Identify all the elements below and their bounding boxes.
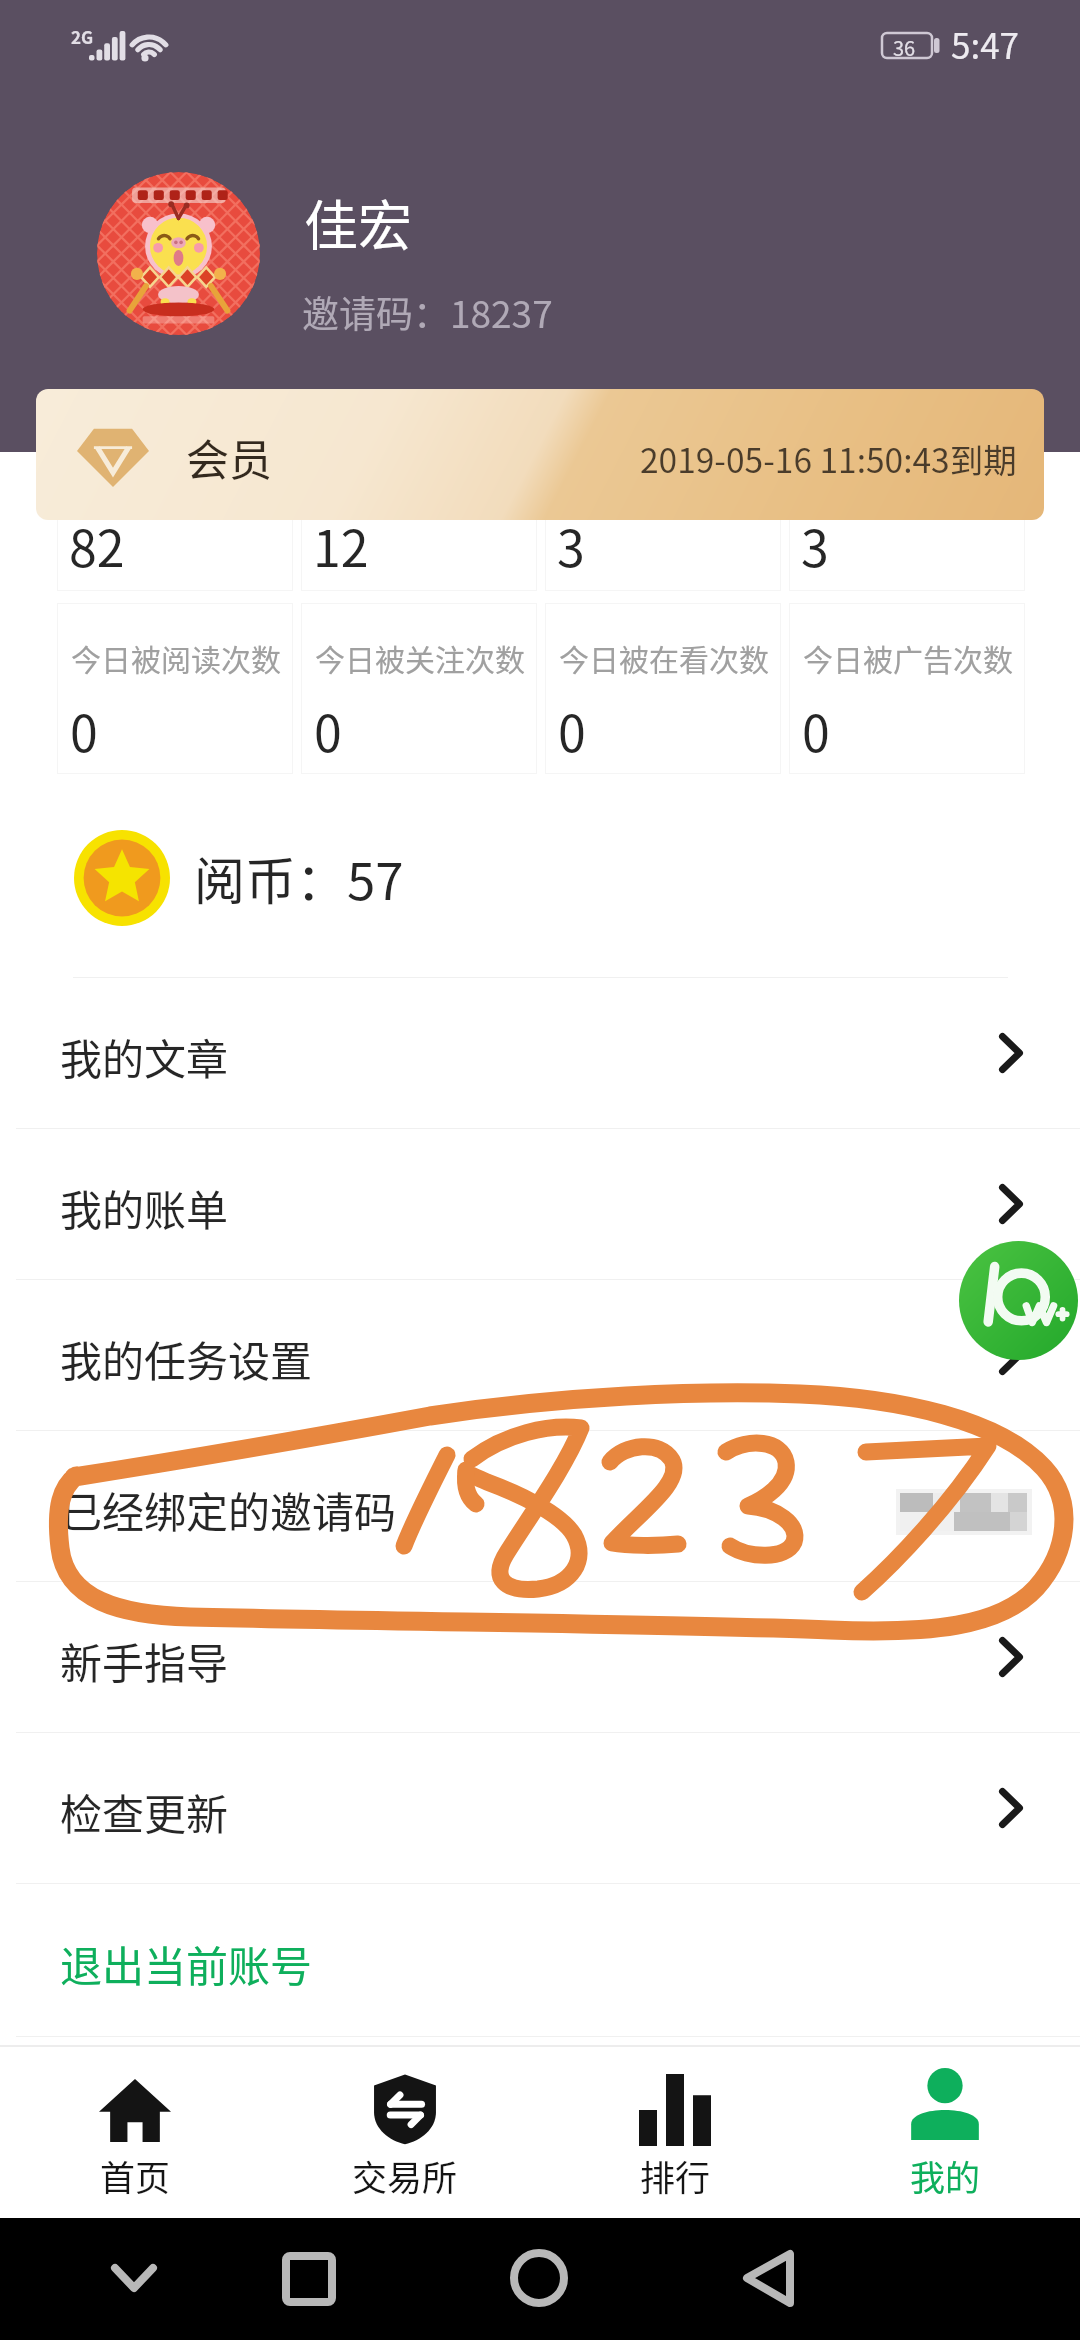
button[interactable]: 会员 [36,389,1044,520]
button[interactable]: 我的账单 [0,1129,1080,1279]
button[interactable]: 排行 [540,2047,810,2227]
staticText: 会员 [186,426,272,488]
staticText: 今日被在看次数 [559,636,769,679]
button[interactable]: 已经绑定的邀请码 [0,1431,1080,1581]
staticText: 36 [893,33,916,62]
staticText: 0 [70,694,98,766]
staticText: 今日被广告次数 [803,636,1013,679]
staticText: 3 [557,509,585,581]
staticText: 3 [801,509,829,581]
staticText: 阅币：57 [194,841,404,915]
button[interactable]: 新手指导 [0,1582,1080,1732]
staticText: 佳宏 [304,183,412,261]
button[interactable]: 10w plus [959,1241,1078,1360]
button[interactable]: 3 [789,462,1025,591]
staticText: 5:47 [951,18,1020,69]
button[interactable]: 今日被在看次数 [545,603,781,774]
staticText: 今日被阅读次数 [71,636,281,679]
button[interactable]: 阅币：57 [74,828,404,928]
staticText: 今日被关注次数 [315,636,525,679]
button[interactable]: 3 [545,462,781,591]
button[interactable]: 首页 [0,2047,270,2227]
staticText: 已经绑定的邀请码 [60,1479,397,1540]
staticText: 0 [314,694,342,766]
staticText: 82 [69,509,125,581]
button[interactable]: 今日被阅读次数 [57,603,293,774]
staticText: 我的 [910,2150,981,2201]
staticText: 交易所 [352,2150,458,2201]
button[interactable]: 检查更新 [0,1733,1080,1883]
staticText: 检查更新 [60,1781,229,1842]
button[interactable]: 交易所 [270,2047,540,2227]
staticText: 2019-05-16 11:50:43到期 [640,434,1017,483]
staticText: 我的任务设置 [60,1328,313,1389]
staticText: 首页 [100,2150,171,2201]
button[interactable]: 今日被关注次数 [301,603,537,774]
button[interactable]: 82 [57,462,293,591]
button[interactable]: 12 [301,462,537,591]
staticText: 我的文章 [60,1026,229,1087]
staticText: 0 [558,694,586,766]
staticText: 2G [71,24,94,49]
staticText: 我的账单 [60,1177,229,1238]
button[interactable]: 退出当前账号 [0,1884,1080,2036]
button[interactable]: 今日被广告次数 [789,603,1025,774]
staticText: 邀请码：18237 [302,285,553,339]
staticText: 新手指导 [60,1630,229,1691]
staticText: 0 [802,694,830,766]
button[interactable]: Profile avatar [97,172,260,335]
staticText: 12 [313,509,369,581]
button[interactable]: 我的任务设置 [0,1280,1080,1430]
button[interactable]: 我的 [810,2047,1080,2227]
staticText: 排行 [640,2150,711,2201]
button[interactable]: 我的文章 [0,978,1080,1128]
staticText: 退出当前账号 [60,1933,313,1994]
